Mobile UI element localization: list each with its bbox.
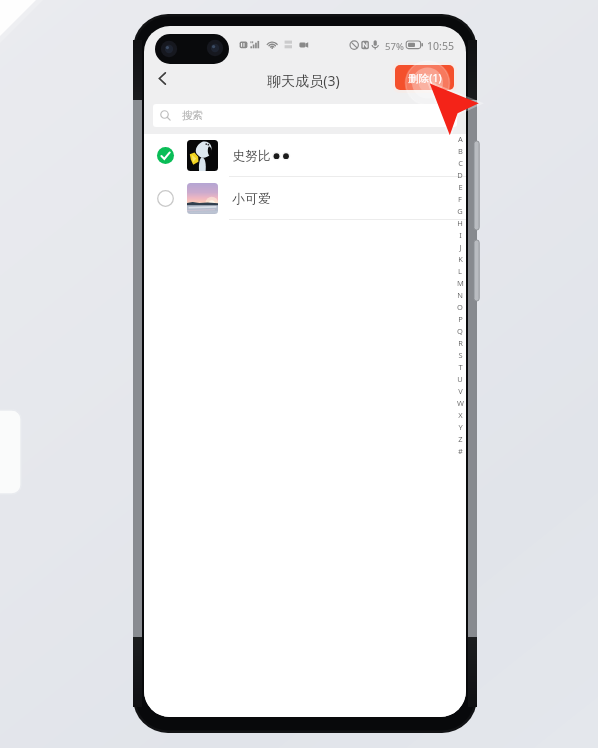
staticText: M — [457, 278, 464, 288]
staticText: 搜索 — [182, 109, 203, 122]
button[interactable]: A — [454, 133, 466, 145]
staticText: U — [457, 374, 463, 384]
button[interactable]: # — [454, 445, 466, 457]
button[interactable]: H — [454, 217, 466, 229]
staticText: W — [457, 398, 464, 408]
staticText: F — [458, 194, 462, 204]
staticText: D — [457, 170, 463, 180]
button[interactable]: 删除(1) — [395, 65, 454, 90]
button[interactable]: Y — [454, 421, 466, 433]
button[interactable]: Q — [454, 325, 466, 337]
staticText: R — [458, 338, 463, 348]
staticText: O — [457, 302, 463, 312]
button[interactable]: S — [454, 349, 466, 361]
button[interactable]: E — [454, 181, 466, 193]
staticText: G — [457, 206, 463, 216]
staticText: X — [458, 410, 463, 420]
button[interactable]: F — [454, 193, 466, 205]
staticText: V — [458, 386, 463, 396]
staticText: 小可爱 — [232, 191, 271, 207]
button[interactable]: Back — [147, 63, 177, 93]
button[interactable]: P — [454, 313, 466, 325]
staticText: I — [459, 230, 462, 240]
staticText: 57% — [385, 40, 404, 53]
staticText: T — [458, 362, 463, 372]
staticText: B — [458, 146, 463, 156]
staticText: Z — [458, 434, 463, 444]
button[interactable]: N — [454, 289, 466, 301]
button[interactable]: C — [454, 157, 466, 169]
button[interactable]: T — [454, 361, 466, 373]
staticText: E — [458, 182, 463, 192]
staticText: A — [458, 134, 463, 144]
button[interactable]: M — [454, 277, 466, 289]
staticText: 10:55 — [427, 39, 454, 53]
button[interactable]: J — [454, 241, 466, 253]
button[interactable]: W — [454, 397, 466, 409]
staticText: N — [457, 290, 463, 300]
staticText: 史努比 — [232, 148, 271, 164]
button[interactable]: U — [454, 373, 466, 385]
button[interactable]: L — [454, 265, 466, 277]
button[interactable]: 搜索 — [153, 104, 457, 127]
button[interactable]: R — [454, 337, 466, 349]
staticText: Y — [458, 422, 463, 432]
staticText: 聊天成员(3) — [267, 71, 340, 90]
staticText: # — [458, 446, 463, 456]
staticText: H — [457, 218, 463, 228]
button[interactable]: O — [454, 301, 466, 313]
staticText: C — [458, 158, 463, 168]
staticText: L — [458, 266, 462, 276]
button[interactable]: X — [454, 409, 466, 421]
button[interactable]: V — [454, 385, 466, 397]
staticText: J — [459, 242, 462, 252]
staticText: S — [458, 350, 463, 360]
staticText: K — [458, 254, 463, 264]
button[interactable]: 史努比 — [144, 134, 466, 177]
staticText: P — [458, 314, 463, 324]
button[interactable]: D — [454, 169, 466, 181]
button[interactable]: 小可爱 — [144, 177, 466, 220]
button[interactable]: I — [454, 229, 466, 241]
button[interactable]: Z — [454, 433, 466, 445]
staticText: Q — [457, 326, 463, 336]
staticText: 删除(1) — [408, 71, 442, 85]
button[interactable]: G — [454, 205, 466, 217]
button[interactable]: K — [454, 253, 466, 265]
button[interactable]: B — [454, 145, 466, 157]
